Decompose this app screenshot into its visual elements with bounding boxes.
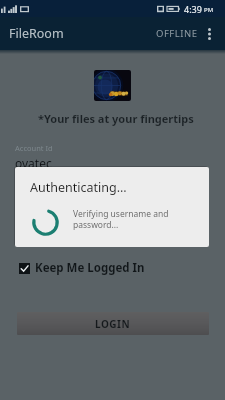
button[interactable]: LOGIN (17, 312, 209, 335)
staticText: LOGIN (95, 317, 131, 331)
button[interactable]: More options (202, 17, 216, 50)
staticText: Verifying username and password... (73, 208, 169, 230)
button[interactable]: Keep Me Logged In (15, 258, 155, 278)
staticText: Authenticating... (30, 179, 127, 196)
staticText: PM (204, 6, 214, 14)
staticText: FileRoom (9, 25, 64, 42)
staticText: OFFLINE (156, 27, 198, 40)
staticText: Account Id (15, 143, 53, 153)
staticText: *Your files at your fingertips (38, 111, 194, 126)
staticText: Keep Me Logged In (35, 260, 145, 276)
staticText: 4:39 (184, 3, 202, 15)
staticText: ovatec (15, 155, 52, 171)
button[interactable]: OFFLINE (152, 21, 202, 46)
